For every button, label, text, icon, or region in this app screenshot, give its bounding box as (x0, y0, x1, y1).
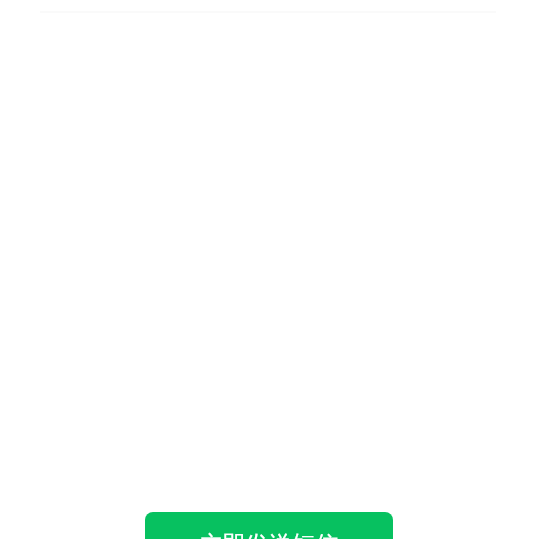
staticText: 立即发送短信 (200, 530, 338, 539)
button[interactable]: 立即发送短信 (145, 512, 393, 539)
